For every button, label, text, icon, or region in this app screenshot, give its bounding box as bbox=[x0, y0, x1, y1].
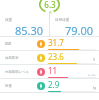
staticText: 79.00 bbox=[65, 23, 94, 35]
staticText: 内臓脂肪レベル bbox=[5, 70, 29, 74]
button[interactable]: 内臓脂肪レベル bbox=[0, 65, 99, 79]
button[interactable]: BMI bbox=[0, 37, 99, 51]
staticText: BMI bbox=[5, 41, 12, 46]
staticText: 体重 bbox=[5, 18, 13, 23]
button[interactable]: Health score 6.3 bbox=[39, 0, 60, 13]
staticText: % bbox=[93, 58, 96, 62]
staticText: 85.30 bbox=[15, 23, 44, 35]
button[interactable]: 体脂肪率 bbox=[0, 51, 99, 65]
staticText: 点 bbox=[49, 10, 52, 14]
button[interactable]: 骨量 bbox=[0, 79, 99, 93]
staticText: 31.7 bbox=[48, 37, 64, 48]
staticText: 2.9 bbox=[48, 79, 60, 90]
staticText: 体脂肪率 bbox=[5, 56, 19, 60]
staticText: 目標体重 bbox=[55, 18, 70, 23]
button[interactable]: 目標体重 bbox=[50, 17, 99, 36]
staticText: 骨量 bbox=[5, 84, 12, 88]
staticText: 6.3 bbox=[44, 0, 56, 10]
staticText: 23.6 bbox=[48, 51, 64, 62]
button[interactable]: 体重 bbox=[0, 17, 49, 36]
staticText: 11 bbox=[48, 65, 58, 76]
staticText: kg bbox=[93, 86, 96, 90]
staticText: レベル bbox=[88, 73, 96, 76]
